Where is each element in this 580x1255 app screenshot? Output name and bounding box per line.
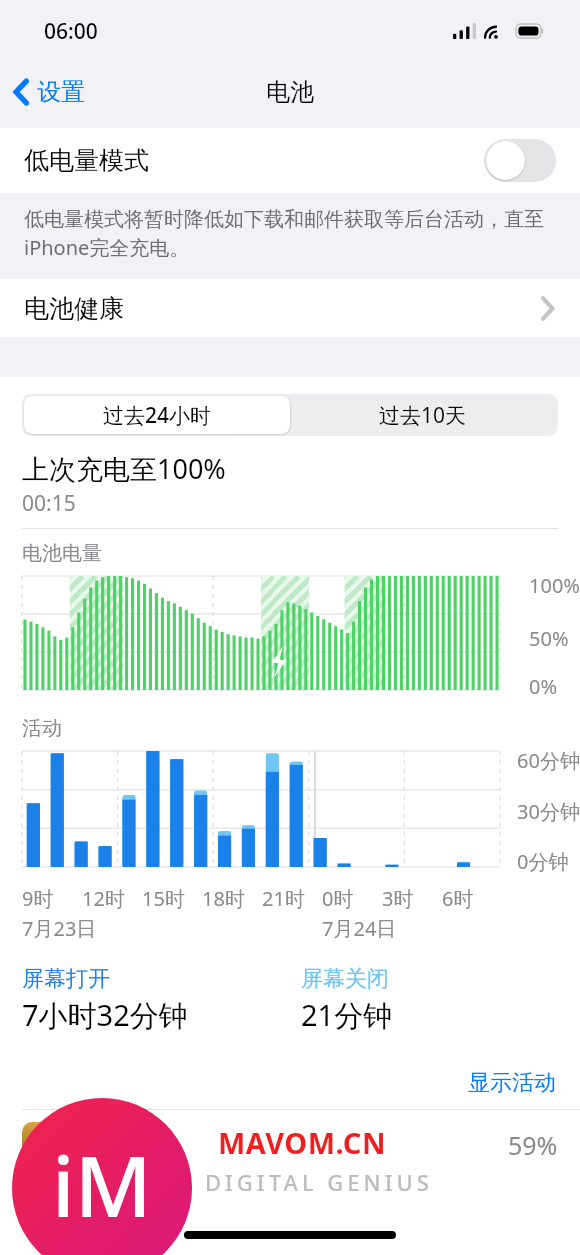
staticText: 上次充电至100%: [22, 450, 226, 487]
staticText: 屏幕打开: [22, 965, 110, 993]
button[interactable]: Low Power Mode toggle: [484, 139, 556, 182]
staticText: 游戏: [82, 1131, 128, 1160]
staticText: 过去10天: [379, 401, 467, 430]
staticText: 0时: [322, 885, 354, 912]
staticText: 6时: [442, 885, 474, 912]
staticText: 00:15: [22, 489, 76, 518]
staticText: 15时: [142, 885, 185, 912]
staticText: 7月23日: [22, 915, 97, 942]
staticText: 设置: [37, 77, 85, 107]
staticText: DIGITAL GENIUS: [205, 1167, 433, 1197]
staticText: 9时: [22, 885, 54, 912]
staticText: 60分钟: [517, 747, 580, 774]
staticText: 7小时32分钟: [22, 995, 188, 1035]
button[interactable]: 低电量模式: [0, 128, 580, 193]
staticText: 活动: [22, 716, 62, 741]
staticText: 30分钟: [517, 798, 580, 825]
staticText: 59%: [508, 1128, 558, 1162]
staticText: 电池电量: [22, 541, 102, 566]
staticText: 100%: [529, 572, 580, 599]
button[interactable]: 过去24小时: [24, 396, 290, 434]
staticText: iM: [52, 1127, 152, 1241]
staticText: 18时: [202, 885, 245, 912]
button[interactable]: 游戏: [0, 1110, 580, 1180]
staticText: 06:00: [44, 17, 98, 46]
staticText: 电池健康: [24, 293, 124, 324]
staticText: 21时: [262, 885, 305, 912]
staticText: MAVOM.CN: [218, 1123, 386, 1162]
button[interactable]: 过去10天: [290, 396, 556, 434]
button[interactable]: 设置: [0, 71, 97, 113]
staticText: 7月24日: [322, 915, 397, 942]
staticText: 0%: [529, 673, 558, 700]
staticText: 21分钟: [301, 995, 393, 1035]
button[interactable]: 显示活动: [0, 1057, 580, 1109]
staticText: 屏幕关闭: [301, 965, 389, 993]
staticText: 电池: [266, 77, 314, 107]
staticText: 低电量模式: [24, 145, 149, 176]
staticText: 显示活动: [468, 1069, 556, 1097]
staticText: 低电量模式将暂时降低如下载和邮件获取等后台活动，直至 iPhone完全充电。: [24, 205, 556, 261]
staticText: 0分钟: [517, 848, 569, 875]
staticText: 3时: [382, 885, 414, 912]
staticText: 50%: [529, 625, 569, 652]
staticText: 过去24小时: [103, 401, 212, 430]
staticText: 12时: [82, 885, 125, 912]
button[interactable]: 电池健康: [0, 279, 580, 337]
